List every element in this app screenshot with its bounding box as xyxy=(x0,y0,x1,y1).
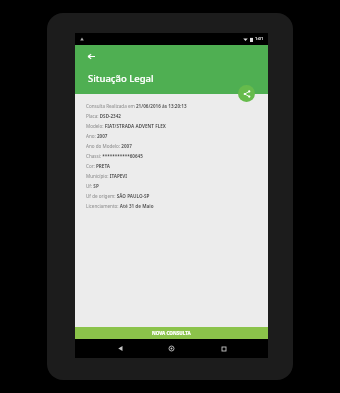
button[interactable]: Back xyxy=(114,342,127,355)
staticText: Uf de origem: SÃO PAULO-SP xyxy=(86,193,150,199)
button[interactable]: Back xyxy=(84,49,99,64)
staticText: Município: ITAPEVI xyxy=(86,173,128,179)
staticText: NOVA CONSULTA xyxy=(152,330,191,336)
staticText: Uf: SP xyxy=(86,183,99,189)
staticText: Licenciamento: Até 31 de Maio xyxy=(86,203,154,209)
staticText: Chassi: ***********60645 xyxy=(86,153,143,159)
staticText: Situação Legal xyxy=(88,72,154,85)
staticText: Consulta Realizada em 21/06/2016 às 13:2… xyxy=(86,103,187,109)
staticText: Ano: 2007 xyxy=(86,133,108,139)
staticText: 1:01 xyxy=(255,36,264,42)
button[interactable]: NOVA CONSULTA xyxy=(75,327,268,339)
button[interactable]: Home xyxy=(165,342,178,355)
button[interactable]: Share xyxy=(238,85,255,102)
staticText: Placa: DSD-2342 xyxy=(86,113,121,119)
staticText: Ano do Modelo: 2007 xyxy=(86,143,132,149)
staticText: Modelo: FIAT/STRADA ADVENT FLEX xyxy=(86,123,166,129)
staticText: Cor: PRETA xyxy=(86,163,110,169)
button[interactable]: Recents xyxy=(217,342,230,355)
